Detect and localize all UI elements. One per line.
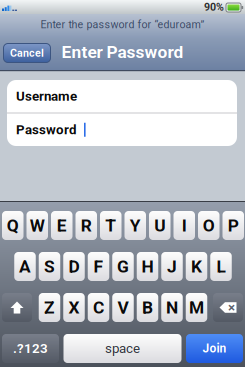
button[interactable]: Username	[7, 80, 237, 112]
staticText: Z	[44, 297, 55, 318]
button[interactable]: Delete	[213, 293, 243, 322]
staticText: 90%	[204, 1, 224, 13]
button[interactable]: S	[39, 252, 60, 281]
staticText: B	[142, 297, 153, 318]
staticText: V	[117, 297, 128, 318]
staticText: O	[203, 215, 215, 236]
staticText: Cancel	[10, 47, 44, 59]
staticText: space	[105, 341, 140, 356]
staticText: ×	[228, 300, 235, 315]
button[interactable]: E	[51, 211, 72, 240]
button[interactable]: N	[161, 293, 183, 322]
staticText: K	[191, 256, 202, 277]
button[interactable]: space	[63, 334, 181, 363]
staticText: .?123	[13, 341, 48, 356]
staticText: T	[105, 215, 116, 236]
button[interactable]: P	[222, 211, 244, 240]
staticText: Enter Password	[61, 42, 183, 62]
staticText: J	[167, 256, 177, 277]
staticText: Q	[7, 215, 19, 236]
button[interactable]: F	[88, 252, 109, 281]
button[interactable]: U	[149, 211, 170, 240]
button[interactable]: Shift	[2, 293, 32, 322]
button[interactable]: Z	[39, 293, 60, 322]
staticText: S	[44, 256, 55, 277]
staticText: D	[68, 256, 79, 277]
button[interactable]: R	[75, 211, 97, 240]
staticText: W	[30, 215, 45, 236]
button[interactable]: A	[14, 252, 36, 281]
button[interactable]: D	[63, 252, 85, 281]
button[interactable]: T	[100, 211, 121, 240]
staticText: Y	[130, 215, 141, 236]
button[interactable]: W	[26, 211, 48, 240]
button[interactable]: L	[210, 252, 232, 281]
button[interactable]: M	[186, 293, 207, 322]
staticText: R	[81, 215, 92, 236]
staticText: Join	[202, 341, 226, 356]
button[interactable]: I	[173, 211, 195, 240]
button[interactable]: Q	[2, 211, 23, 240]
button[interactable]: Y	[124, 211, 146, 240]
button[interactable]: Cancel	[3, 43, 50, 62]
staticText: M	[189, 297, 204, 318]
staticText: P	[228, 215, 239, 236]
button[interactable]: K	[186, 252, 207, 281]
staticText: A	[19, 256, 31, 277]
button[interactable]: X	[63, 293, 85, 322]
staticText: N	[166, 297, 178, 318]
button[interactable]: V	[112, 293, 134, 322]
staticText: U	[154, 215, 165, 236]
button[interactable]: Password	[7, 113, 237, 146]
button[interactable]: H	[137, 252, 158, 281]
button[interactable]: B	[137, 293, 158, 322]
staticText: E	[57, 215, 67, 236]
staticText: C	[93, 297, 104, 318]
button[interactable]: C	[88, 293, 109, 322]
button[interactable]: G	[112, 252, 134, 281]
button[interactable]: .?123	[2, 334, 59, 363]
staticText: H	[141, 256, 153, 277]
button[interactable]: J	[161, 252, 183, 281]
button[interactable]: Join	[186, 334, 243, 363]
staticText: G	[117, 256, 129, 277]
staticText: Username	[16, 88, 77, 104]
staticText: F	[93, 256, 103, 277]
staticText: Enter the password for “eduroam”	[40, 18, 204, 31]
staticText: Password	[16, 122, 77, 137]
staticText: L	[216, 256, 225, 277]
staticText: X	[68, 297, 79, 318]
staticText: I	[182, 215, 187, 236]
button[interactable]: O	[198, 211, 219, 240]
